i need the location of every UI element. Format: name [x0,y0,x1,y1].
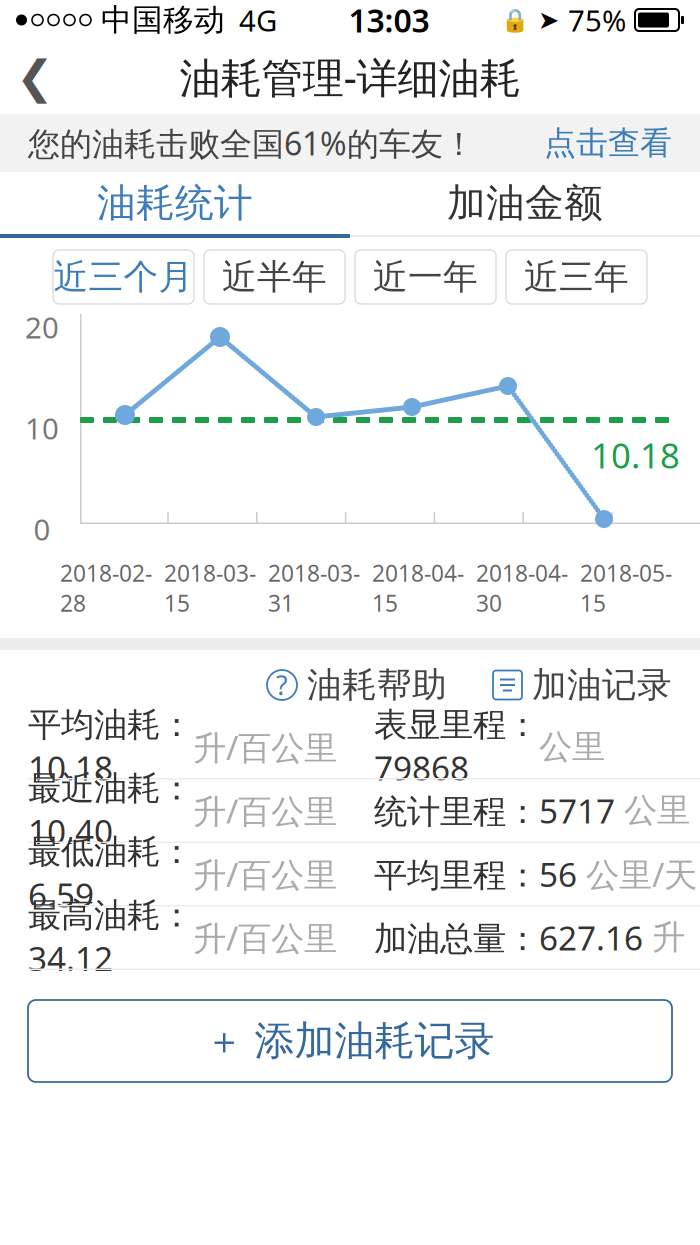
staticText: 中国移动 [101,1,225,39]
staticText: 🔒 [501,7,529,33]
staticText: 2018-04-30 [476,558,568,618]
staticText: 加油记录 [532,664,672,706]
staticText: 加油总量：627.16 [374,915,652,960]
button[interactable]: 返回 [0,40,70,114]
staticText: 2018-02-28 [60,558,152,618]
staticText: 公里 [539,726,605,767]
staticText: 油耗统计 [97,179,253,227]
staticText: 最近油耗：10.40 [28,768,193,853]
staticText: 最低油耗：6.59 [28,831,193,917]
staticText: 升 [652,917,685,958]
staticText: 2018-05-15 [580,558,672,618]
staticText: ? [276,667,288,703]
staticText: ❮ [16,51,54,103]
staticText: 油耗管理-详细油耗 [179,50,520,104]
staticText: 2018-03-15 [164,558,256,618]
button[interactable]: 近一年 [355,250,496,304]
staticText: 公里/天 [586,852,697,896]
staticText: 升/百公里 [193,788,337,833]
button[interactable]: ＋ [28,1000,672,1082]
button[interactable]: 加油金额 [350,172,700,234]
staticText: ＋ [205,1018,242,1064]
staticText: ➤ [538,6,559,34]
staticText: 近半年 [222,256,327,298]
staticText: 公里 [624,790,690,831]
staticText: 75% [568,0,626,39]
staticText: 最高油耗：34.12 [28,895,193,980]
staticText: 升/百公里 [193,725,337,769]
staticText: 2018-03-31 [268,558,360,618]
staticText: 2018-04-15 [372,558,464,618]
button[interactable]: ? [267,664,447,706]
button[interactable]: 油耗统计 [0,172,350,234]
staticText: 平均油耗：10.18 [28,704,193,790]
staticText: 20 [25,307,59,346]
staticText: 油耗帮助 [307,664,447,706]
staticText: 统计里程：5717 [374,788,624,833]
button[interactable]: 您的油耗击败全国61%的车友！ [0,114,700,172]
staticText: 10.18 [591,432,680,478]
button[interactable]: 近三个月 [53,250,194,304]
staticText: 4G [239,0,277,39]
staticText: 点击查看 [544,123,672,163]
staticText: 10 [25,408,59,447]
staticText: 平均里程：56 [374,852,586,896]
staticText: 升/百公里 [193,852,337,896]
staticText: 您的油耗击败全国61%的车友！ [28,122,475,164]
staticText: 升/百公里 [193,915,337,960]
staticText: 近一年 [373,256,478,298]
staticText: 13:03 [348,0,429,41]
staticText: 表显里程：79868 [374,704,539,790]
staticText: 加油金额 [447,179,603,227]
staticText: 近三年 [524,256,629,298]
staticText: 近三个月 [53,256,193,298]
staticText: 添加油耗记录 [254,1016,494,1065]
staticText: 0 [33,509,50,548]
button[interactable]: 近三年 [506,250,647,304]
button[interactable]: 近半年 [204,250,345,304]
button[interactable]: 加油记录 [493,664,672,706]
